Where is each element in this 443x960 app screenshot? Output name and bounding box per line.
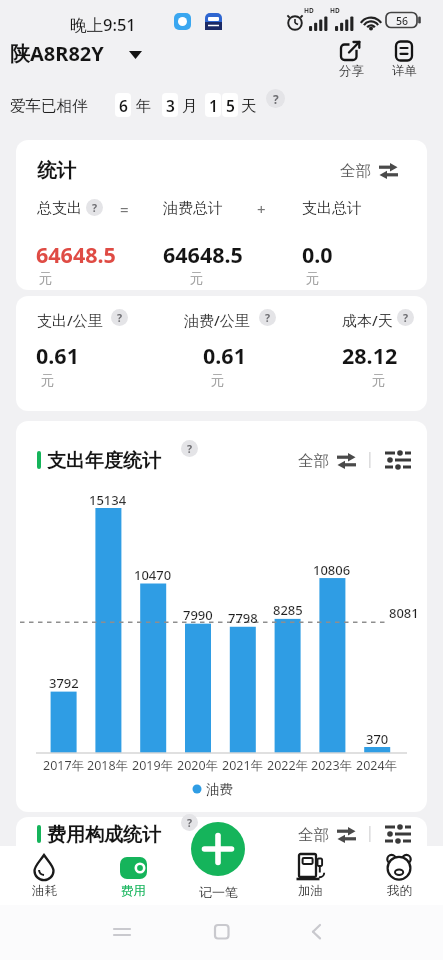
- staticText: 油费/公里: [184, 310, 250, 330]
- button[interactable]: 我的: [362, 846, 436, 905]
- staticText: 费用: [121, 883, 146, 899]
- staticText: 5: [226, 95, 235, 116]
- staticText: 56: [396, 14, 409, 28]
- staticText: 统计: [37, 158, 76, 183]
- staticText: 64648.5: [163, 240, 243, 269]
- staticText: 元: [39, 270, 53, 287]
- staticText: 全部: [340, 161, 371, 181]
- staticText: 元: [372, 372, 386, 389]
- staticText: 陕A8R82Y: [10, 40, 104, 67]
- staticText: 370: [366, 730, 389, 748]
- button[interactable]: 全部: [332, 156, 407, 184]
- staticText: 8081: [389, 604, 419, 622]
- button[interactable]: 全部: [292, 818, 362, 848]
- staticText: HD: [330, 6, 340, 15]
- staticText: 年: [136, 96, 152, 116]
- staticText: 爱车已相伴: [10, 96, 88, 116]
- button[interactable]: ?: [259, 309, 276, 326]
- button[interactable]: 加油: [273, 846, 347, 905]
- staticText: 2019年: [132, 757, 174, 774]
- staticText: 全部: [298, 825, 329, 845]
- staticText: 全部: [298, 451, 329, 471]
- staticText: ?: [273, 91, 279, 107]
- button[interactable]: [385, 451, 411, 469]
- staticText: ?: [265, 311, 271, 325]
- staticText: 3792: [49, 674, 79, 692]
- button[interactable]: [191, 822, 245, 876]
- staticText: 支出年度统计: [47, 449, 161, 473]
- button[interactable]: 油耗: [7, 846, 81, 905]
- staticText: 我的: [387, 883, 412, 899]
- staticText: 2021年: [222, 757, 264, 774]
- staticText: 元: [41, 372, 55, 389]
- button[interactable]: ?: [181, 440, 198, 457]
- staticText: 油费总计: [163, 199, 223, 218]
- staticText: 7990: [183, 606, 213, 624]
- staticText: 成本/天: [342, 310, 393, 330]
- button[interactable]: ?: [111, 309, 128, 326]
- staticText: 0.61: [36, 341, 79, 370]
- staticText: 0.61: [203, 341, 246, 370]
- staticText: ?: [187, 442, 193, 456]
- staticText: 支出/公里: [37, 310, 103, 330]
- staticText: 6: [119, 95, 128, 116]
- staticText: 加油: [298, 883, 323, 899]
- staticText: =: [120, 199, 129, 219]
- staticText: 15134: [89, 491, 127, 509]
- staticText: ?: [117, 311, 123, 325]
- staticText: 总支出: [37, 199, 82, 218]
- staticText: 2023年: [311, 757, 353, 774]
- button[interactable]: 陕A8R82Y: [10, 40, 150, 70]
- staticText: 元: [190, 270, 204, 287]
- button[interactable]: ?: [266, 89, 285, 108]
- staticText: 详单: [392, 63, 417, 79]
- button[interactable]: ?: [181, 814, 198, 831]
- staticText: 2018年: [87, 757, 129, 774]
- staticText: 记一笔: [199, 884, 238, 900]
- staticText: 晚上9:51: [70, 13, 136, 36]
- staticText: 2022年: [267, 757, 309, 774]
- staticText: 支出总计: [302, 199, 362, 218]
- staticText: 天: [241, 96, 257, 116]
- staticText: HD: [304, 6, 314, 15]
- staticText: 2024年: [356, 757, 398, 774]
- staticText: +: [257, 199, 266, 219]
- staticText: 8285: [273, 601, 303, 619]
- button[interactable]: 全部: [292, 444, 362, 474]
- staticText: 元: [306, 270, 320, 287]
- button[interactable]: [385, 825, 411, 843]
- staticText: 28.12: [342, 341, 398, 370]
- staticText: ?: [403, 311, 409, 325]
- staticText: 2017年: [43, 757, 85, 774]
- staticText: 分享: [339, 63, 364, 79]
- button[interactable]: 费用: [96, 846, 170, 905]
- staticText: 0.0: [302, 240, 333, 269]
- staticText: 10470: [134, 566, 172, 584]
- staticText: 10806: [313, 561, 351, 579]
- staticText: 元: [211, 372, 225, 389]
- staticText: 油耗: [32, 883, 57, 899]
- button[interactable]: ?: [86, 199, 103, 216]
- staticText: 费用构成统计: [47, 823, 161, 847]
- button[interactable]: 分享: [333, 38, 369, 82]
- staticText: 2020年: [177, 757, 219, 774]
- staticText: 月: [182, 96, 198, 116]
- button[interactable]: 详单: [386, 38, 422, 82]
- button[interactable]: ?: [397, 309, 414, 326]
- staticText: 油费: [206, 781, 233, 798]
- staticText: ?: [92, 201, 98, 215]
- staticText: 7798: [228, 609, 258, 627]
- staticText: 3: [166, 95, 175, 116]
- staticText: 64648.5: [36, 240, 116, 269]
- staticText: 1: [209, 95, 218, 116]
- staticText: ?: [187, 816, 193, 830]
